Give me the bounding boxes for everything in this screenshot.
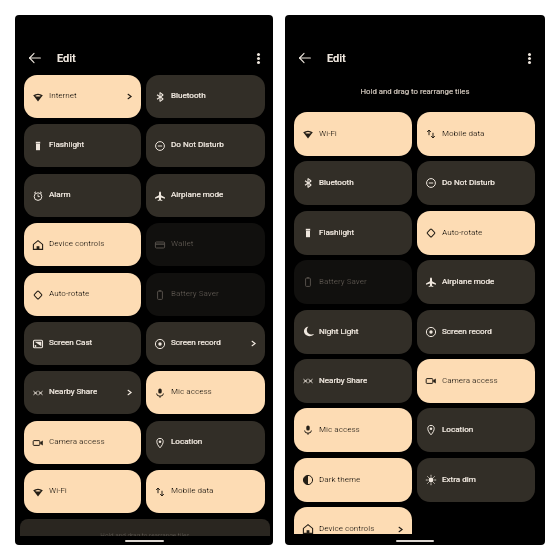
button[interactable]: Mic access bbox=[294, 408, 412, 452]
button[interactable]: Device controls bbox=[24, 223, 141, 266]
staticText: Mic access bbox=[171, 386, 212, 395]
button[interactable]: Screen record bbox=[417, 310, 535, 354]
button[interactable]: More options bbox=[518, 47, 540, 69]
button[interactable]: Camera access bbox=[24, 421, 141, 464]
button[interactable]: Airplane mode bbox=[146, 174, 265, 217]
staticText: Mic access bbox=[319, 424, 360, 433]
button[interactable]: Dark theme bbox=[294, 458, 412, 502]
button[interactable]: Auto-rotate bbox=[417, 211, 535, 255]
staticText: Nearby Share bbox=[319, 375, 368, 384]
staticText: Hold and drag to rearrange tiles bbox=[285, 87, 545, 96]
staticText: Dark theme bbox=[319, 474, 361, 483]
staticText: Device controls bbox=[319, 523, 375, 532]
staticText: Edit bbox=[327, 52, 346, 65]
staticText: Airplane mode bbox=[171, 189, 224, 198]
staticText: Screen record bbox=[171, 337, 221, 346]
button[interactable]: Mic access bbox=[146, 371, 265, 414]
button[interactable]: Wi-Fi bbox=[294, 112, 412, 156]
staticText: Camera access bbox=[442, 375, 498, 384]
button[interactable]: More options bbox=[247, 47, 269, 69]
button[interactable]: Camera access bbox=[417, 359, 535, 403]
staticText: Night Light bbox=[319, 326, 359, 335]
button[interactable]: Location bbox=[417, 408, 535, 452]
staticText: Auto-rotate bbox=[442, 227, 483, 236]
staticText: Do Not Disturb bbox=[171, 139, 224, 148]
staticText: Flashlight bbox=[49, 139, 85, 148]
button[interactable]: Airplane mode bbox=[417, 260, 535, 304]
staticText: Location bbox=[442, 424, 474, 433]
staticText: Battery Saver bbox=[319, 276, 367, 285]
staticText: Mobile data bbox=[171, 485, 214, 494]
button[interactable]: Auto-rotate bbox=[24, 273, 141, 316]
button[interactable]: Extra dim bbox=[417, 458, 535, 502]
staticText: Internet bbox=[49, 90, 77, 99]
button[interactable]: Nearby Share bbox=[294, 359, 412, 403]
staticText: Wi-Fi bbox=[319, 128, 337, 137]
button[interactable]: Screen Cast bbox=[24, 322, 141, 365]
staticText: Airplane mode bbox=[442, 276, 495, 285]
button[interactable]: Wallet bbox=[146, 223, 265, 266]
staticText: Auto-rotate bbox=[49, 288, 90, 297]
button[interactable]: Do Not Disturb bbox=[146, 124, 265, 167]
staticText: Mobile data bbox=[442, 128, 485, 137]
staticText: Flashlight bbox=[319, 227, 355, 236]
button[interactable]: Bluetooth bbox=[146, 75, 265, 118]
button[interactable]: Night Light bbox=[294, 310, 412, 354]
button[interactable]: Mobile data bbox=[417, 112, 535, 156]
button[interactable]: Wi-Fi bbox=[24, 470, 141, 513]
staticText: Battery Saver bbox=[171, 288, 219, 297]
button[interactable]: Screen record bbox=[146, 322, 265, 365]
button[interactable]: Flashlight bbox=[24, 124, 141, 167]
button[interactable]: Back bbox=[24, 47, 46, 69]
staticText: Bluetooth bbox=[171, 90, 206, 99]
staticText: Extra dim bbox=[442, 474, 476, 483]
button[interactable]: Back bbox=[294, 47, 316, 69]
button[interactable]: Flashlight bbox=[294, 211, 412, 255]
staticText: Location bbox=[171, 436, 203, 445]
button[interactable]: Alarm bbox=[24, 174, 141, 217]
staticText: Wi-Fi bbox=[49, 485, 67, 494]
button[interactable]: Do Not Disturb bbox=[417, 161, 535, 205]
staticText: Bluetooth bbox=[319, 177, 354, 186]
staticText: Edit bbox=[57, 52, 76, 65]
staticText: Screen record bbox=[442, 326, 492, 335]
button[interactable]: Nearby Share bbox=[24, 371, 141, 414]
button[interactable]: Internet bbox=[24, 75, 141, 118]
staticText: Do Not Disturb bbox=[442, 177, 495, 186]
button[interactable]: Location bbox=[146, 421, 265, 464]
button[interactable]: Battery Saver bbox=[294, 260, 412, 304]
staticText: Wallet bbox=[171, 238, 194, 247]
staticText: Screen Cast bbox=[49, 337, 93, 346]
staticText: Alarm bbox=[49, 189, 71, 198]
button[interactable]: Battery Saver bbox=[146, 273, 265, 316]
button[interactable]: Device controls bbox=[294, 507, 412, 534]
staticText: Nearby Share bbox=[49, 386, 98, 395]
staticText: Hold and drag to rearrange tiles bbox=[20, 532, 270, 536]
button[interactable]: Mobile data bbox=[146, 470, 265, 513]
button[interactable]: Bluetooth bbox=[294, 161, 412, 205]
staticText: Camera access bbox=[49, 436, 105, 445]
staticText: Device controls bbox=[49, 238, 105, 247]
